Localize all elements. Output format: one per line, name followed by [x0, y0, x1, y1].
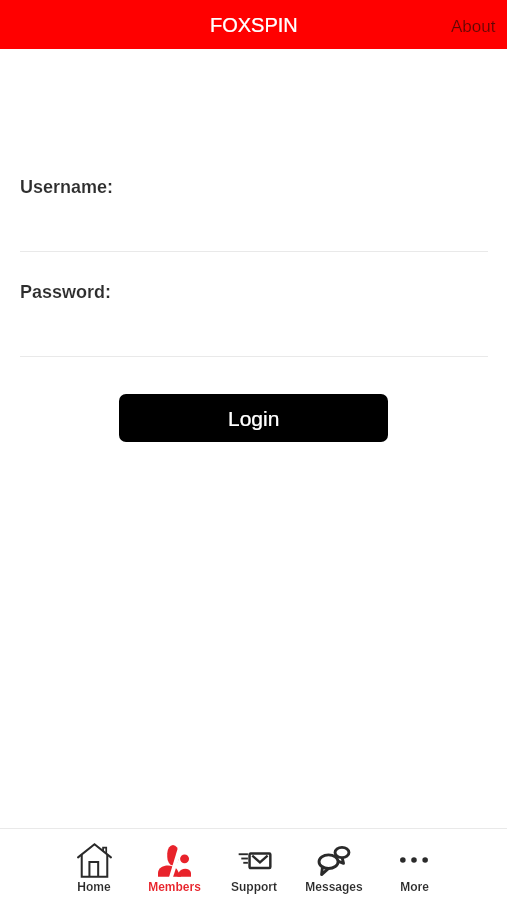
staticText: About	[451, 17, 496, 36]
button[interactable]: Login	[119, 394, 388, 442]
button[interactable]: More	[374, 829, 454, 900]
button[interactable]: Home	[54, 829, 134, 900]
other: Home	[77, 843, 112, 878]
button[interactable]: Password:	[20, 279, 488, 357]
button[interactable]: About	[440, 7, 507, 46]
staticText: More	[400, 880, 429, 893]
other: Support	[238, 844, 271, 877]
staticText: Support	[231, 880, 277, 893]
button[interactable]: Support	[214, 829, 294, 900]
button[interactable]: Members	[134, 829, 214, 900]
staticText: Login	[228, 407, 280, 430]
other: Members	[158, 844, 191, 877]
staticText: Messages	[305, 880, 363, 893]
staticText: Home	[77, 880, 111, 893]
staticText: Username:	[20, 177, 114, 197]
staticText: Members	[148, 880, 201, 893]
button[interactable]: Username:	[20, 174, 488, 252]
other: More	[398, 844, 430, 876]
staticText: FOXSPIN	[210, 14, 298, 36]
other: Messages	[317, 843, 351, 877]
staticText: Password:	[20, 282, 112, 302]
button[interactable]: Messages	[294, 829, 374, 900]
